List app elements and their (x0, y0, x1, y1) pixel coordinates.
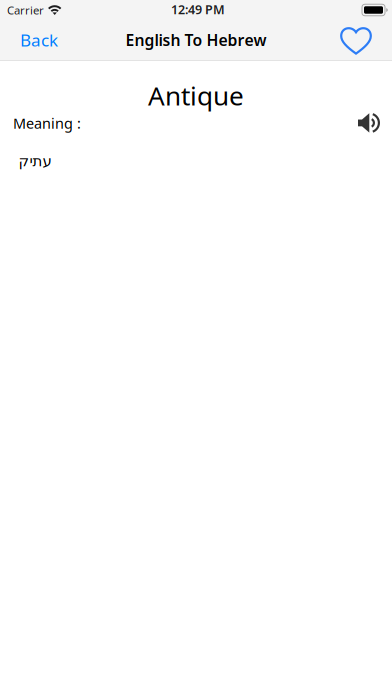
button[interactable]: Play pronunciation (358, 113, 381, 134)
button[interactable]: Back (0, 20, 84, 60)
staticText: Meaning : (13, 114, 81, 133)
staticText: עתיק (18, 153, 51, 170)
staticText: English To Hebrew (125, 30, 266, 50)
staticText: Antique (148, 78, 244, 113)
staticText: Carrier (7, 2, 44, 17)
button[interactable]: Favourite (334, 20, 392, 60)
staticText: 12:49 PM (171, 1, 225, 18)
staticText: Back (20, 29, 58, 51)
